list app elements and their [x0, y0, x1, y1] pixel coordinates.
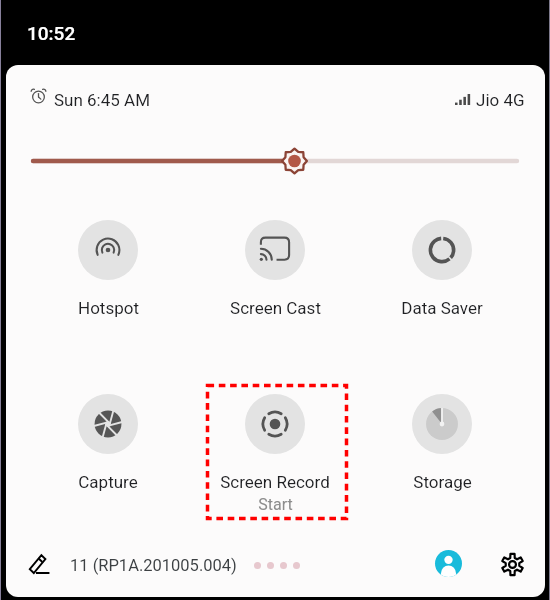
staticText: Screen Cast: [230, 298, 321, 318]
staticText: 11 (RP1A.201005.004): [70, 556, 237, 575]
staticText: Start: [258, 495, 293, 514]
button[interactable]: Settings: [501, 553, 524, 576]
staticText: Jio 4G: [476, 90, 525, 110]
button[interactable]: Account: [435, 550, 462, 577]
staticText: Hotspot: [78, 298, 139, 318]
button[interactable]: Capture: [28, 394, 188, 492]
button[interactable]: Data Saver: [362, 220, 522, 318]
staticText: Capture: [78, 472, 138, 492]
staticText: Data Saver: [401, 298, 483, 318]
button[interactable]: Screen Cast: [195, 220, 355, 318]
staticText: Sun 6:45 AM: [54, 90, 150, 110]
button[interactable]: Edit: [29, 554, 49, 574]
button[interactable]: Screen Record: [195, 394, 355, 514]
staticText: Screen Record: [220, 472, 330, 492]
staticText: 10:52: [27, 22, 76, 44]
staticText: Storage: [413, 472, 472, 492]
button[interactable]: Hotspot: [28, 220, 188, 318]
button[interactable]: Storage: [362, 394, 522, 492]
